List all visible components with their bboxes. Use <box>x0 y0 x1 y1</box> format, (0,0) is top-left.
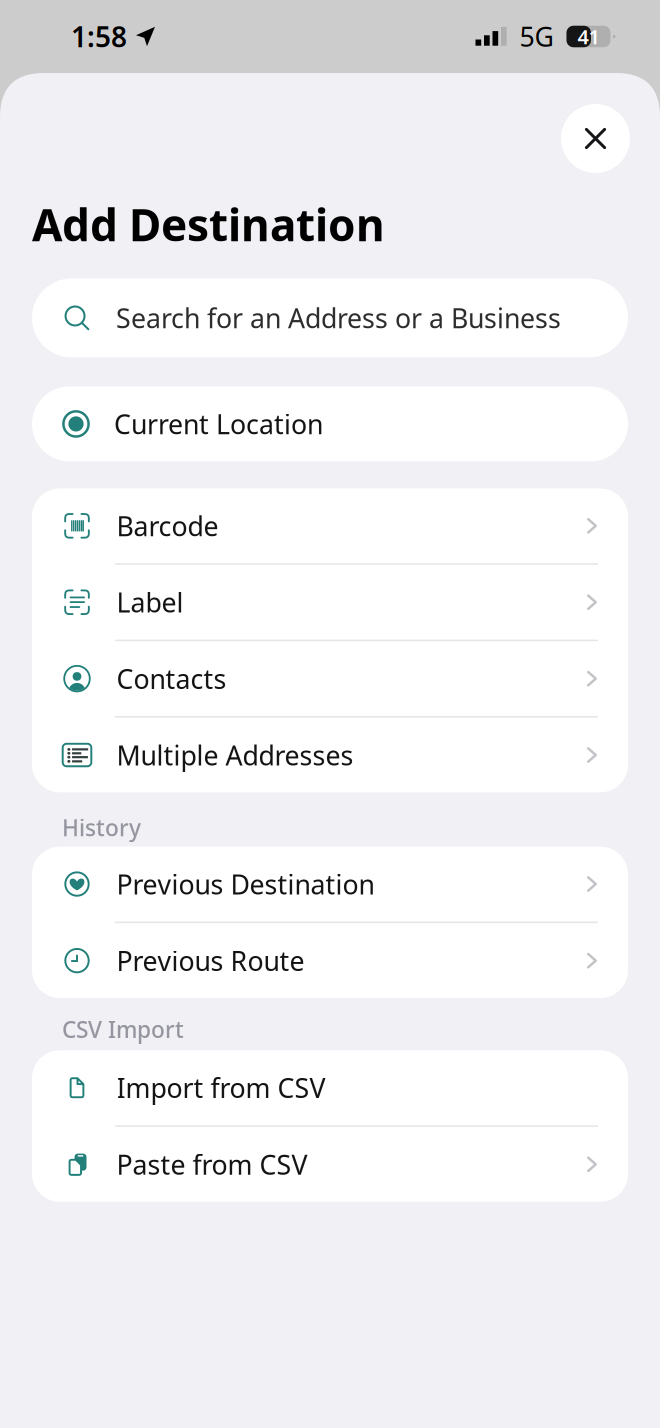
staticText: Add Destination <box>32 195 385 253</box>
staticText: CSV Import <box>62 1014 184 1044</box>
staticText: Barcode <box>116 508 218 543</box>
staticText: Previous Route <box>116 943 304 978</box>
button[interactable]: Import from CSV <box>32 1050 628 1125</box>
button[interactable]: Multiple Addresses <box>32 718 628 792</box>
staticText: Contacts <box>116 661 226 696</box>
staticText: 41 <box>577 23 599 50</box>
button[interactable]: Previous Destination <box>32 846 628 921</box>
button[interactable]: Search for an Address or a Business <box>32 278 628 357</box>
button[interactable]: Contacts <box>32 641 628 716</box>
staticText: History <box>62 812 141 842</box>
button[interactable]: Previous Route <box>32 923 628 998</box>
staticText: 1:58 <box>71 18 127 55</box>
button[interactable]: Current Location <box>32 386 628 461</box>
button[interactable]: Close <box>561 104 630 173</box>
staticText: Label <box>116 584 183 620</box>
staticText: Import from CSV <box>116 1070 325 1105</box>
button[interactable]: Paste from CSV <box>32 1127 628 1202</box>
staticText: Previous Destination <box>116 866 374 902</box>
staticText: 5G <box>519 19 553 54</box>
staticText: Search for an Address or a Business <box>116 300 561 336</box>
staticText: Multiple Addresses <box>116 737 353 773</box>
staticText: Current Location <box>114 406 323 442</box>
button[interactable]: Barcode <box>32 488 628 563</box>
button[interactable]: Label <box>32 565 628 640</box>
staticText: Paste from CSV <box>116 1147 307 1182</box>
